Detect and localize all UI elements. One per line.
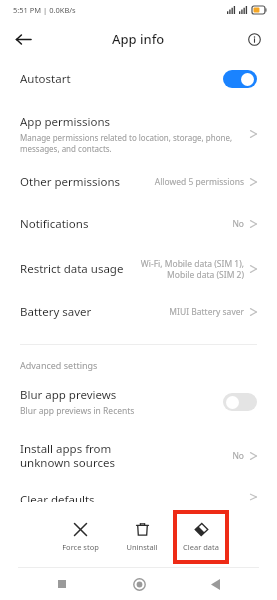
button[interactable]: App permissions: [0, 110, 277, 158]
staticText: Advanced settings: [20, 359, 98, 371]
button[interactable]: Clear defaults: [0, 488, 277, 506]
staticText: Install apps from unknown sources: [20, 441, 232, 470]
staticText: Wi-Fi, Mobile data (SIM 1), Mobile data …: [140, 258, 244, 280]
staticText: App info: [112, 30, 165, 48]
button[interactable]: Info: [239, 24, 269, 54]
staticText: MIUI Battery saver: [169, 306, 244, 318]
staticText: Restrict data usage: [20, 261, 140, 277]
button[interactable]: Install apps from unknown sources: [0, 437, 277, 474]
button[interactable]: Restrict data usage: [0, 254, 277, 284]
button[interactable]: Back: [200, 569, 230, 599]
button[interactable]: Uninstall: [111, 522, 173, 552]
staticText: Blur app previews: [20, 387, 117, 403]
staticText: Manage permissions related to location, …: [20, 132, 233, 154]
staticText: No: [232, 450, 244, 462]
staticText: Force stop: [62, 542, 99, 552]
button[interactable]: Clear data: [177, 514, 225, 560]
button[interactable]: Other permissions: [0, 170, 277, 194]
staticText: App permissions: [20, 114, 111, 130]
staticText: Autostart: [20, 71, 223, 87]
button[interactable]: Recents: [47, 569, 77, 599]
button[interactable]: Force stop: [49, 522, 111, 552]
button[interactable]: Back: [8, 24, 38, 54]
button[interactable]: Home: [124, 569, 154, 599]
staticText: Notifications: [20, 216, 232, 232]
staticText: Battery saver: [20, 304, 169, 320]
button[interactable]: Notifications: [0, 212, 277, 236]
button[interactable]: Autostart: [0, 62, 277, 96]
button[interactable]: Blur app previews: [0, 383, 277, 421]
staticText: 5:51 PM | 0.0KB/s: [13, 5, 76, 15]
staticText: Clear data: [183, 542, 219, 552]
staticText: Other permissions: [20, 174, 154, 190]
staticText: Clear defaults: [20, 492, 95, 502]
staticText: Blur app previews in Recents: [20, 405, 135, 417]
staticText: No: [232, 218, 244, 230]
staticText: Uninstall: [126, 542, 158, 552]
staticText: Allowed 5 permissions: [154, 176, 244, 188]
button[interactable]: Battery saver: [0, 300, 277, 324]
